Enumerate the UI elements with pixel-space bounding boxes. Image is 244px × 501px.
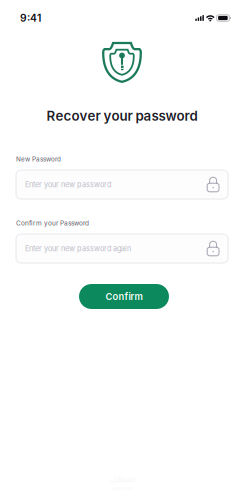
- staticText: Confirm your Password: [16, 219, 89, 227]
- staticText: Enter your new password: [25, 180, 111, 189]
- staticText: Enter your new password again: [25, 244, 131, 253]
- staticText: 9:41: [20, 12, 41, 24]
- staticText: Confirm: [105, 291, 142, 302]
- button[interactable]: Enter your new password again: [16, 234, 228, 263]
- button[interactable]: Enter your new password: [16, 170, 228, 199]
- staticText: Recover your password: [46, 108, 197, 124]
- button[interactable]: Confirm: [79, 284, 169, 309]
- staticText: New Password: [16, 155, 61, 163]
